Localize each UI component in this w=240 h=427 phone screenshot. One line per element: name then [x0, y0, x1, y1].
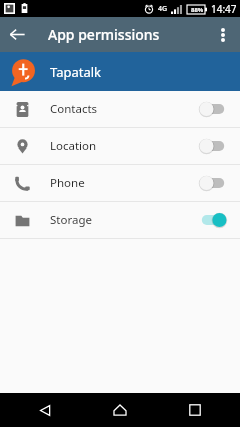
staticText: Phone [50, 175, 199, 191]
button[interactable]: More options [205, 17, 240, 52]
staticText: 14:47 [211, 2, 237, 16]
staticText: 4G [158, 4, 168, 14]
button[interactable]: Phone [0, 165, 240, 201]
button[interactable]: Location [0, 128, 240, 164]
button[interactable]: Home [90, 393, 150, 427]
button[interactable]: Off [199, 138, 227, 154]
button[interactable]: On [199, 212, 227, 228]
staticText: Location [50, 138, 199, 154]
staticText: Storage [50, 212, 199, 228]
staticText: Contacts [50, 101, 199, 117]
button[interactable]: Back [0, 17, 35, 52]
staticText: Tapatalk [50, 63, 102, 81]
staticText: 88% [191, 6, 204, 14]
button[interactable]: Recent apps [165, 393, 225, 427]
button[interactable]: Back [15, 393, 75, 427]
button[interactable]: Off [199, 175, 227, 191]
button[interactable]: Off [199, 101, 227, 117]
staticText: App permissions [48, 25, 160, 44]
button[interactable]: Storage [0, 202, 240, 238]
button[interactable]: Tapatalk [0, 52, 240, 91]
button[interactable]: Contacts [0, 91, 240, 127]
